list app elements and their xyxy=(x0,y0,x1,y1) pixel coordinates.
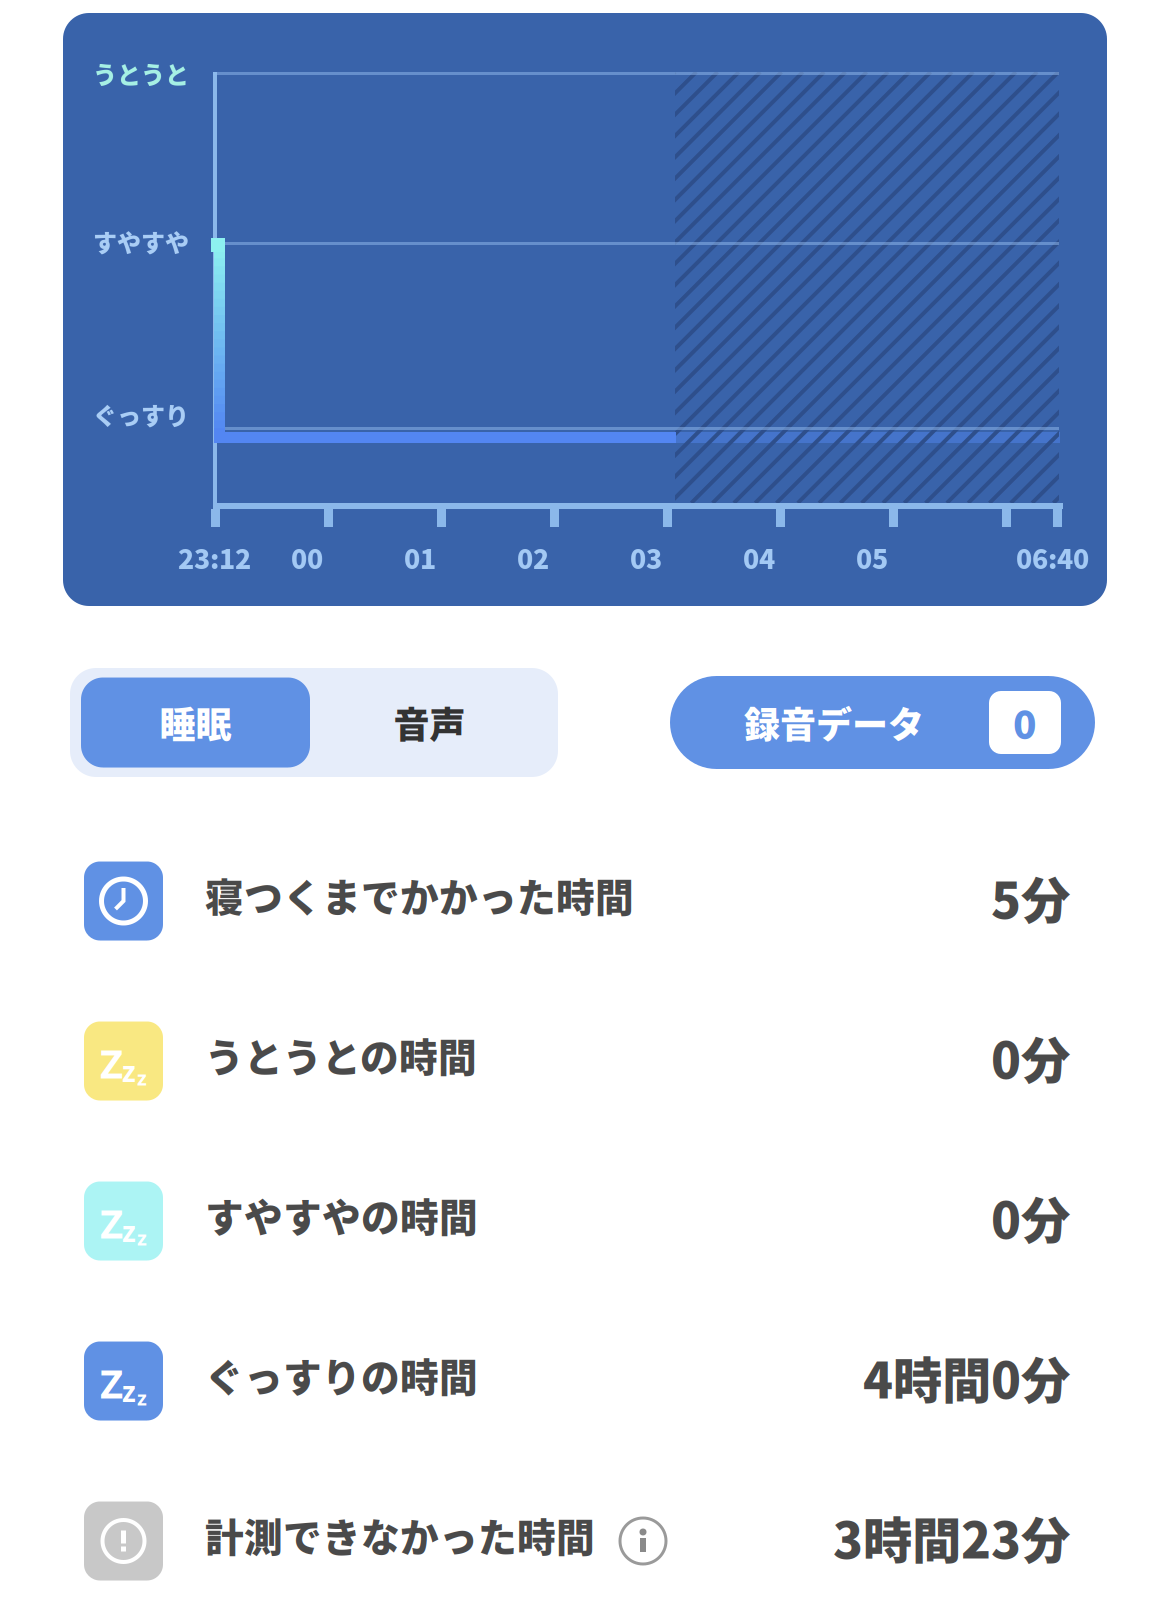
staticText: 0分 xyxy=(991,1021,1070,1093)
button[interactable]: 睡眠 xyxy=(81,677,310,767)
button[interactable]: 音声 xyxy=(310,677,549,767)
staticText: z xyxy=(137,1064,147,1091)
staticText: 4時間0分 xyxy=(863,1341,1070,1413)
staticText: ぐっすり xyxy=(93,397,189,432)
button[interactable]: 録音データ xyxy=(670,676,1095,769)
staticText: 02 xyxy=(517,538,549,577)
staticText: 録音データ xyxy=(744,696,924,748)
staticText: 01 xyxy=(404,538,436,577)
staticText: 睡眠 xyxy=(159,696,231,748)
staticText: 5分 xyxy=(991,861,1070,933)
staticText: Z xyxy=(100,1356,123,1410)
staticText: 3時間23分 xyxy=(833,1501,1070,1573)
staticText: z xyxy=(122,1052,136,1090)
staticText: 0分 xyxy=(991,1181,1070,1253)
staticText: 寝つくまでかかった時間 xyxy=(205,867,634,923)
staticText: 00 xyxy=(291,538,323,577)
button[interactable]: 計測できなかった時間 xyxy=(84,1491,1070,1591)
staticText: うとうとの時間 xyxy=(205,1027,477,1083)
staticText: 23:12 xyxy=(178,538,251,577)
staticText: ぐっすりの時間 xyxy=(205,1347,478,1403)
staticText: 03 xyxy=(630,538,662,577)
staticText: 06:40 xyxy=(1016,538,1089,577)
staticText: うとうと xyxy=(93,56,189,91)
staticText: すやすや xyxy=(93,224,189,259)
button[interactable]: Z xyxy=(84,1011,1070,1111)
staticText: Z xyxy=(100,1196,123,1250)
staticText: 0 xyxy=(1013,694,1037,750)
button[interactable]: Z xyxy=(84,1331,1070,1431)
staticText: Z xyxy=(100,1036,123,1090)
staticText: z xyxy=(122,1212,136,1250)
staticText: z xyxy=(122,1372,136,1410)
staticText: 音声 xyxy=(393,696,465,748)
staticText: z xyxy=(137,1384,147,1411)
staticText: z xyxy=(137,1224,147,1251)
staticText: すやすやの時間 xyxy=(205,1187,478,1243)
staticText: 04 xyxy=(743,538,775,577)
staticText: 05 xyxy=(856,538,888,577)
staticText: 計測できなかった時間 xyxy=(205,1507,595,1563)
button[interactable]: Z xyxy=(84,1171,1070,1271)
button[interactable]: 寝つくまでかかった時間 xyxy=(84,851,1070,951)
